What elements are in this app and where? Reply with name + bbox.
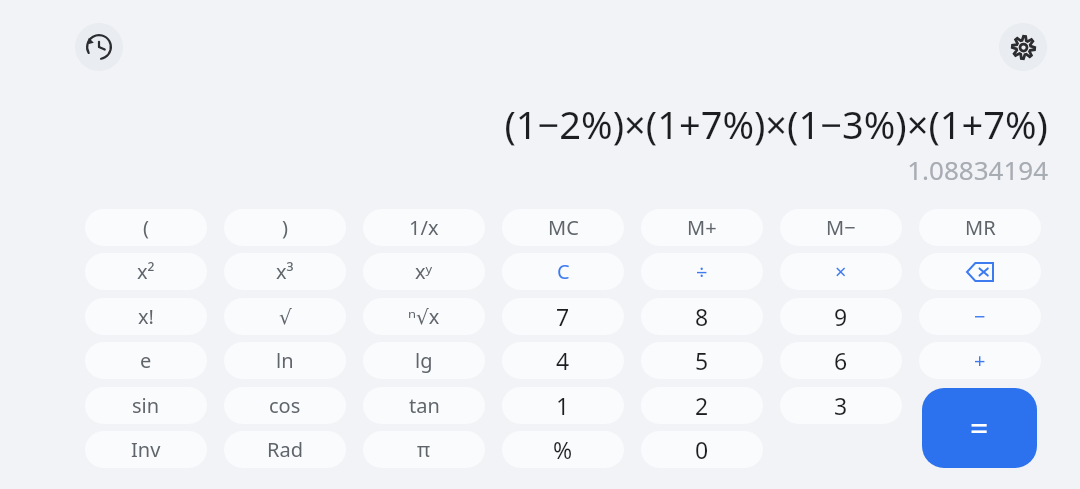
- button[interactable]: =: [922, 388, 1037, 468]
- button[interactable]: 6: [780, 342, 902, 379]
- staticText: 4: [556, 345, 570, 376]
- staticText: 3: [834, 390, 848, 421]
- button[interactable]: cos: [224, 387, 346, 424]
- button[interactable]: %: [502, 431, 624, 468]
- staticText: =: [970, 406, 989, 450]
- button[interactable]: M+: [641, 209, 763, 246]
- button[interactable]: 5: [641, 342, 763, 379]
- staticText: 0: [695, 434, 709, 465]
- staticText: x!: [138, 303, 154, 330]
- button[interactable]: 7: [502, 298, 624, 335]
- button[interactable]: 1/x: [363, 209, 485, 246]
- staticText: sin: [132, 392, 160, 419]
- button[interactable]: ×: [780, 253, 902, 290]
- staticText: C: [557, 258, 570, 285]
- button[interactable]: Settings: [999, 23, 1047, 71]
- button[interactable]: x²: [85, 253, 207, 290]
- staticText: 8: [695, 301, 709, 332]
- button[interactable]: xʸ: [363, 253, 485, 290]
- button[interactable]: Rad: [224, 431, 346, 468]
- button[interactable]: MR: [919, 209, 1041, 246]
- staticText: Rad: [267, 436, 303, 463]
- button[interactable]: e: [85, 342, 207, 379]
- staticText: lg: [415, 347, 433, 374]
- staticText: √: [279, 305, 292, 328]
- staticText: MC: [548, 214, 579, 241]
- button[interactable]: √: [224, 298, 346, 335]
- staticText: 1: [556, 390, 570, 421]
- button[interactable]: x³: [224, 253, 346, 290]
- staticText: 6: [834, 345, 848, 376]
- button[interactable]: ÷: [641, 253, 763, 290]
- button[interactable]: +: [919, 342, 1041, 379]
- staticText: xʸ: [415, 258, 433, 285]
- staticText: ×: [835, 258, 847, 285]
- staticText: cos: [269, 392, 301, 419]
- staticText: 9: [834, 301, 848, 332]
- staticText: x²: [137, 258, 155, 285]
- button[interactable]: MC: [502, 209, 624, 246]
- button[interactable]: Inv: [85, 431, 207, 468]
- staticText: 5: [695, 345, 709, 376]
- button[interactable]: 9: [780, 298, 902, 335]
- staticText: ln: [276, 347, 294, 374]
- staticText: e: [140, 347, 152, 374]
- staticText: %: [553, 434, 573, 465]
- button[interactable]: 8: [641, 298, 763, 335]
- button[interactable]: 2: [641, 387, 763, 424]
- button[interactable]: lg: [363, 342, 485, 379]
- staticText: ÷: [696, 258, 708, 285]
- staticText: (1−2%)×(1+7%)×(1−3%)×(1+7%): [504, 98, 1048, 150]
- button[interactable]: ): [224, 209, 346, 246]
- button[interactable]: History: [75, 23, 123, 71]
- staticText: 2: [695, 390, 709, 421]
- staticText: 1.08834194: [907, 152, 1048, 187]
- button[interactable]: x!: [85, 298, 207, 335]
- staticText: +: [974, 347, 986, 374]
- staticText: Inv: [131, 436, 161, 463]
- staticText: MR: [965, 214, 996, 241]
- staticText: x³: [276, 258, 294, 285]
- staticText: 1/x: [409, 214, 439, 241]
- button[interactable]: (: [85, 209, 207, 246]
- staticText: tan: [409, 392, 440, 419]
- staticText: ⁿ√x: [408, 303, 440, 330]
- staticText: ): [282, 214, 288, 241]
- button[interactable]: π: [363, 431, 485, 468]
- button[interactable]: −: [919, 298, 1041, 335]
- button[interactable]: 1: [502, 387, 624, 424]
- button[interactable]: M−: [780, 209, 902, 246]
- button[interactable]: [919, 253, 1041, 290]
- staticText: M+: [687, 214, 717, 241]
- button[interactable]: sin: [85, 387, 207, 424]
- button[interactable]: tan: [363, 387, 485, 424]
- button[interactable]: 4: [502, 342, 624, 379]
- staticText: −: [974, 303, 986, 330]
- staticText: M−: [826, 214, 856, 241]
- staticText: 7: [556, 301, 570, 332]
- button[interactable]: 3: [780, 387, 902, 424]
- staticText: (: [143, 214, 149, 241]
- button[interactable]: 0: [641, 431, 763, 468]
- button[interactable]: ln: [224, 342, 346, 379]
- button[interactable]: C: [502, 253, 624, 290]
- staticText: π: [417, 436, 431, 463]
- button[interactable]: ⁿ√x: [363, 298, 485, 335]
